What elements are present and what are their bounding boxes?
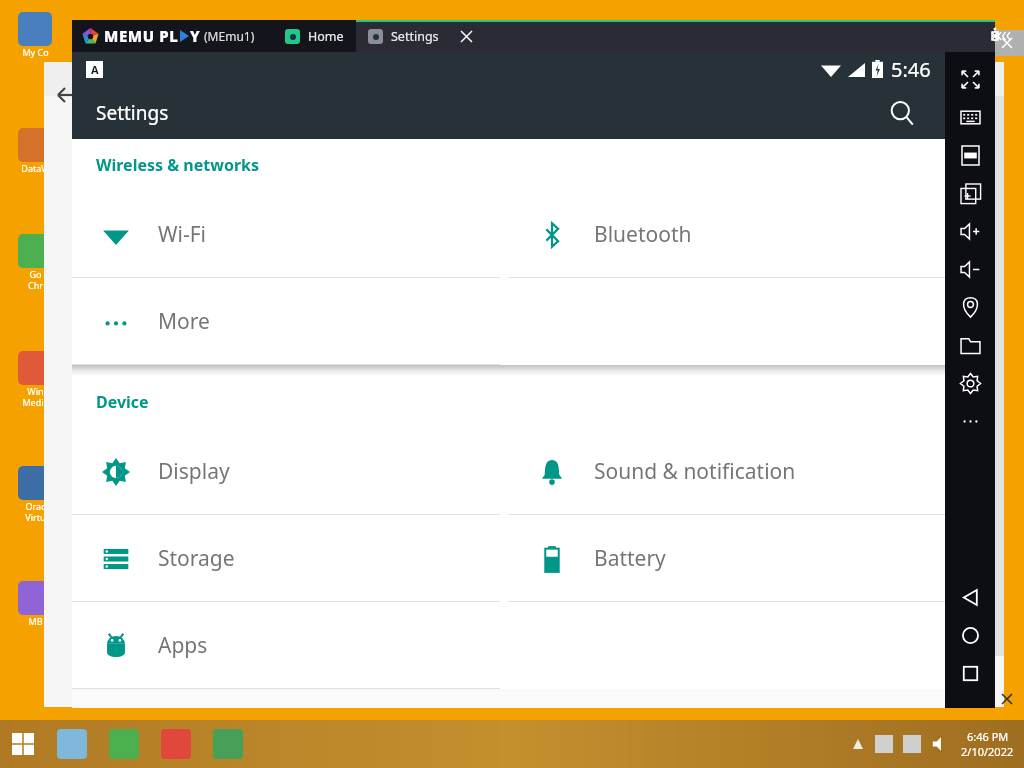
button[interactable]: Volume down xyxy=(945,250,995,288)
staticText: DataW xyxy=(21,162,50,174)
button[interactable]: App xyxy=(150,720,202,768)
button[interactable]: Bluetooth xyxy=(508,191,945,278)
staticText: 5:46 xyxy=(891,56,931,83)
button[interactable]: Close window xyxy=(990,30,1024,56)
button[interactable]: Home xyxy=(273,20,356,52)
staticText: A xyxy=(91,62,99,77)
button[interactable]: Fullscreen xyxy=(945,60,995,98)
staticText: Settings xyxy=(96,100,169,126)
staticText: Apps xyxy=(158,631,208,660)
staticText: Settings xyxy=(391,28,439,45)
staticText: Storage xyxy=(158,544,235,573)
button[interactable]: File Explorer xyxy=(46,720,98,768)
staticText: Orac Virtu xyxy=(25,500,46,523)
button[interactable]: Install APK xyxy=(945,136,995,174)
button[interactable]: Settings xyxy=(356,20,995,52)
button[interactable]: Recents xyxy=(945,654,995,692)
staticText: Sound & notification xyxy=(594,457,796,486)
button[interactable]: Search xyxy=(879,90,925,136)
staticText: Home xyxy=(308,28,344,45)
staticText: Y xyxy=(190,26,200,46)
button[interactable]: Back xyxy=(945,578,995,616)
button[interactable]: Shared folder xyxy=(945,326,995,364)
button[interactable]: Volume up xyxy=(945,212,995,250)
button[interactable]: Apps xyxy=(72,602,508,689)
button[interactable]: More xyxy=(72,278,508,365)
staticText: More xyxy=(158,307,210,336)
staticText: Win Media xyxy=(22,385,49,408)
staticText: My Co xyxy=(22,46,49,58)
staticText: 2/10/2022 xyxy=(961,744,1014,759)
button[interactable]: Settings xyxy=(945,364,995,402)
button[interactable]: Sound & notification xyxy=(508,428,945,515)
button[interactable]: More xyxy=(945,402,995,440)
button[interactable]: Battery xyxy=(508,515,945,602)
button[interactable]: Location xyxy=(945,288,995,326)
staticText: Bluetooth xyxy=(594,220,692,249)
button[interactable]: Keyboard xyxy=(945,98,995,136)
staticText: Wireless & networks xyxy=(96,154,260,176)
staticText: Battery xyxy=(594,544,666,573)
button[interactable]: Display xyxy=(72,428,508,515)
button[interactable]: Home xyxy=(945,616,995,654)
staticText: Device xyxy=(96,391,149,413)
button[interactable]: App 2 xyxy=(202,720,254,768)
staticText: 6:46 PM xyxy=(967,729,1009,744)
button[interactable]: Close xyxy=(990,686,1024,712)
staticText: (MEmu1) xyxy=(204,28,255,44)
staticText: MB xyxy=(28,615,43,627)
button[interactable]: Wi-Fi xyxy=(72,191,508,278)
staticText: MEMU PL xyxy=(104,26,179,46)
staticText: Go Chr xyxy=(28,268,43,291)
staticText: Display xyxy=(158,457,230,486)
button[interactable]: Storage xyxy=(72,515,508,602)
staticText: Wi-Fi xyxy=(158,220,207,249)
button[interactable]: Multi window xyxy=(945,174,995,212)
button[interactable]: Start xyxy=(0,721,46,767)
button[interactable]: Google Chrome xyxy=(98,720,150,768)
